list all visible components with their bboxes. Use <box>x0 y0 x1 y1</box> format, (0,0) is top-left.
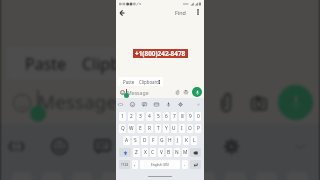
button[interactable]: C <box>150 148 156 157</box>
button[interactable]: 0 <box>195 112 201 121</box>
button[interactable]: M <box>182 148 188 157</box>
button[interactable]: O <box>187 124 193 133</box>
staticText: O <box>188 125 192 132</box>
button[interactable]: 2 <box>128 112 135 121</box>
button[interactable]: Keyboard tool 3 <box>133 134 158 159</box>
button[interactable]: Keyboard tool 2 <box>141 101 148 108</box>
button[interactable]: 6 <box>163 112 169 121</box>
button[interactable]: Keyboard tool 5 <box>219 134 244 159</box>
button[interactable]: Keyboard tool 4 <box>176 134 201 159</box>
staticText: Q <box>121 125 125 132</box>
button[interactable]: backspace <box>190 148 201 157</box>
button[interactable]: 3 <box>137 112 144 121</box>
button[interactable]: Expand <box>195 101 202 108</box>
button[interactable]: 5 <box>132 172 153 180</box>
button[interactable]: G <box>159 136 165 145</box>
staticText: 1 <box>121 113 124 120</box>
button[interactable]: 7 <box>171 112 177 121</box>
button[interactable]: Voice message <box>192 87 202 97</box>
button[interactable]: Emoji <box>118 88 126 96</box>
staticText: R <box>148 125 151 132</box>
staticText: W <box>129 125 134 132</box>
button[interactable]: F <box>150 136 157 145</box>
button[interactable]: Camera <box>182 88 190 96</box>
button[interactable]: 8 <box>179 112 185 121</box>
button[interactable]: Voice message <box>278 85 313 120</box>
staticText: 2 <box>130 113 133 120</box>
button[interactable]: X <box>142 148 148 157</box>
button[interactable]: B <box>166 148 172 157</box>
button[interactable]: shift <box>119 148 131 157</box>
button[interactable]: U <box>171 124 177 133</box>
button[interactable]: Find <box>174 9 187 16</box>
staticText: Message <box>127 89 149 96</box>
button[interactable]: Keyboard tool 5 <box>177 101 184 108</box>
button[interactable]: . <box>182 160 188 169</box>
button[interactable]: Keyboard tool 2 <box>90 134 115 159</box>
button[interactable]: W <box>128 124 135 133</box>
button[interactable]: English (US) <box>140 160 180 169</box>
button[interactable]: 5 <box>155 112 161 121</box>
button[interactable]: J <box>175 136 181 145</box>
button[interactable]: 1 <box>119 112 126 121</box>
button[interactable]: Paste <box>118 77 163 86</box>
staticText: J <box>177 137 179 144</box>
button[interactable]: 7 <box>194 172 215 180</box>
button[interactable]: ?123 <box>119 160 130 169</box>
button[interactable]: 4 <box>146 112 153 121</box>
button[interactable]: Keyboard tool 0 <box>117 101 124 108</box>
button[interactable]: 6 <box>163 172 184 180</box>
button[interactable]: P <box>195 124 201 133</box>
staticText: Clipboard <box>82 53 155 75</box>
staticText: B <box>167 149 171 156</box>
button[interactable]: Attach <box>173 88 181 96</box>
button[interactable]: R <box>146 124 153 133</box>
button[interactable]: D <box>141 136 148 145</box>
button[interactable]: 9 <box>187 112 193 121</box>
staticText: 3 <box>139 113 142 120</box>
staticText: N <box>175 149 179 156</box>
staticText: 7 <box>173 113 176 120</box>
button[interactable]: Attach <box>211 88 240 117</box>
button[interactable]: Back <box>117 8 126 17</box>
button[interactable]: Z <box>133 148 140 157</box>
button[interactable]: H <box>167 136 173 145</box>
staticText: P <box>197 125 200 132</box>
button[interactable]: enter <box>190 160 201 169</box>
button[interactable]: K <box>183 136 189 145</box>
button[interactable]: , <box>132 160 138 169</box>
button[interactable]: More options <box>194 8 202 16</box>
button[interactable]: Q <box>119 124 126 133</box>
button[interactable]: V <box>158 148 164 157</box>
button[interactable]: Paste <box>7 47 171 80</box>
button[interactable]: Y <box>163 124 169 133</box>
button[interactable]: Camera <box>244 88 273 117</box>
staticText: Clipboard <box>139 79 159 85</box>
button[interactable]: S <box>132 136 139 145</box>
button[interactable]: L <box>191 136 197 145</box>
button[interactable]: Keyboard tool 1 <box>47 134 72 159</box>
button[interactable]: T <box>155 124 161 133</box>
button[interactable]: Keyboard tool 0 <box>4 134 29 159</box>
button[interactable]: A <box>123 136 130 145</box>
button[interactable]: Emoji <box>7 88 36 117</box>
button[interactable]: Keyboard tool 3 <box>153 101 160 108</box>
button[interactable]: 4 <box>102 172 122 180</box>
button[interactable]: Keyboard tool 1 <box>129 101 136 108</box>
staticText: L <box>193 137 196 144</box>
button[interactable]: Keyboard tool 4 <box>165 101 172 108</box>
button[interactable]: E <box>137 124 144 133</box>
button[interactable]: N <box>174 148 180 157</box>
staticText: Message <box>38 89 117 115</box>
button[interactable]: I <box>179 124 185 133</box>
